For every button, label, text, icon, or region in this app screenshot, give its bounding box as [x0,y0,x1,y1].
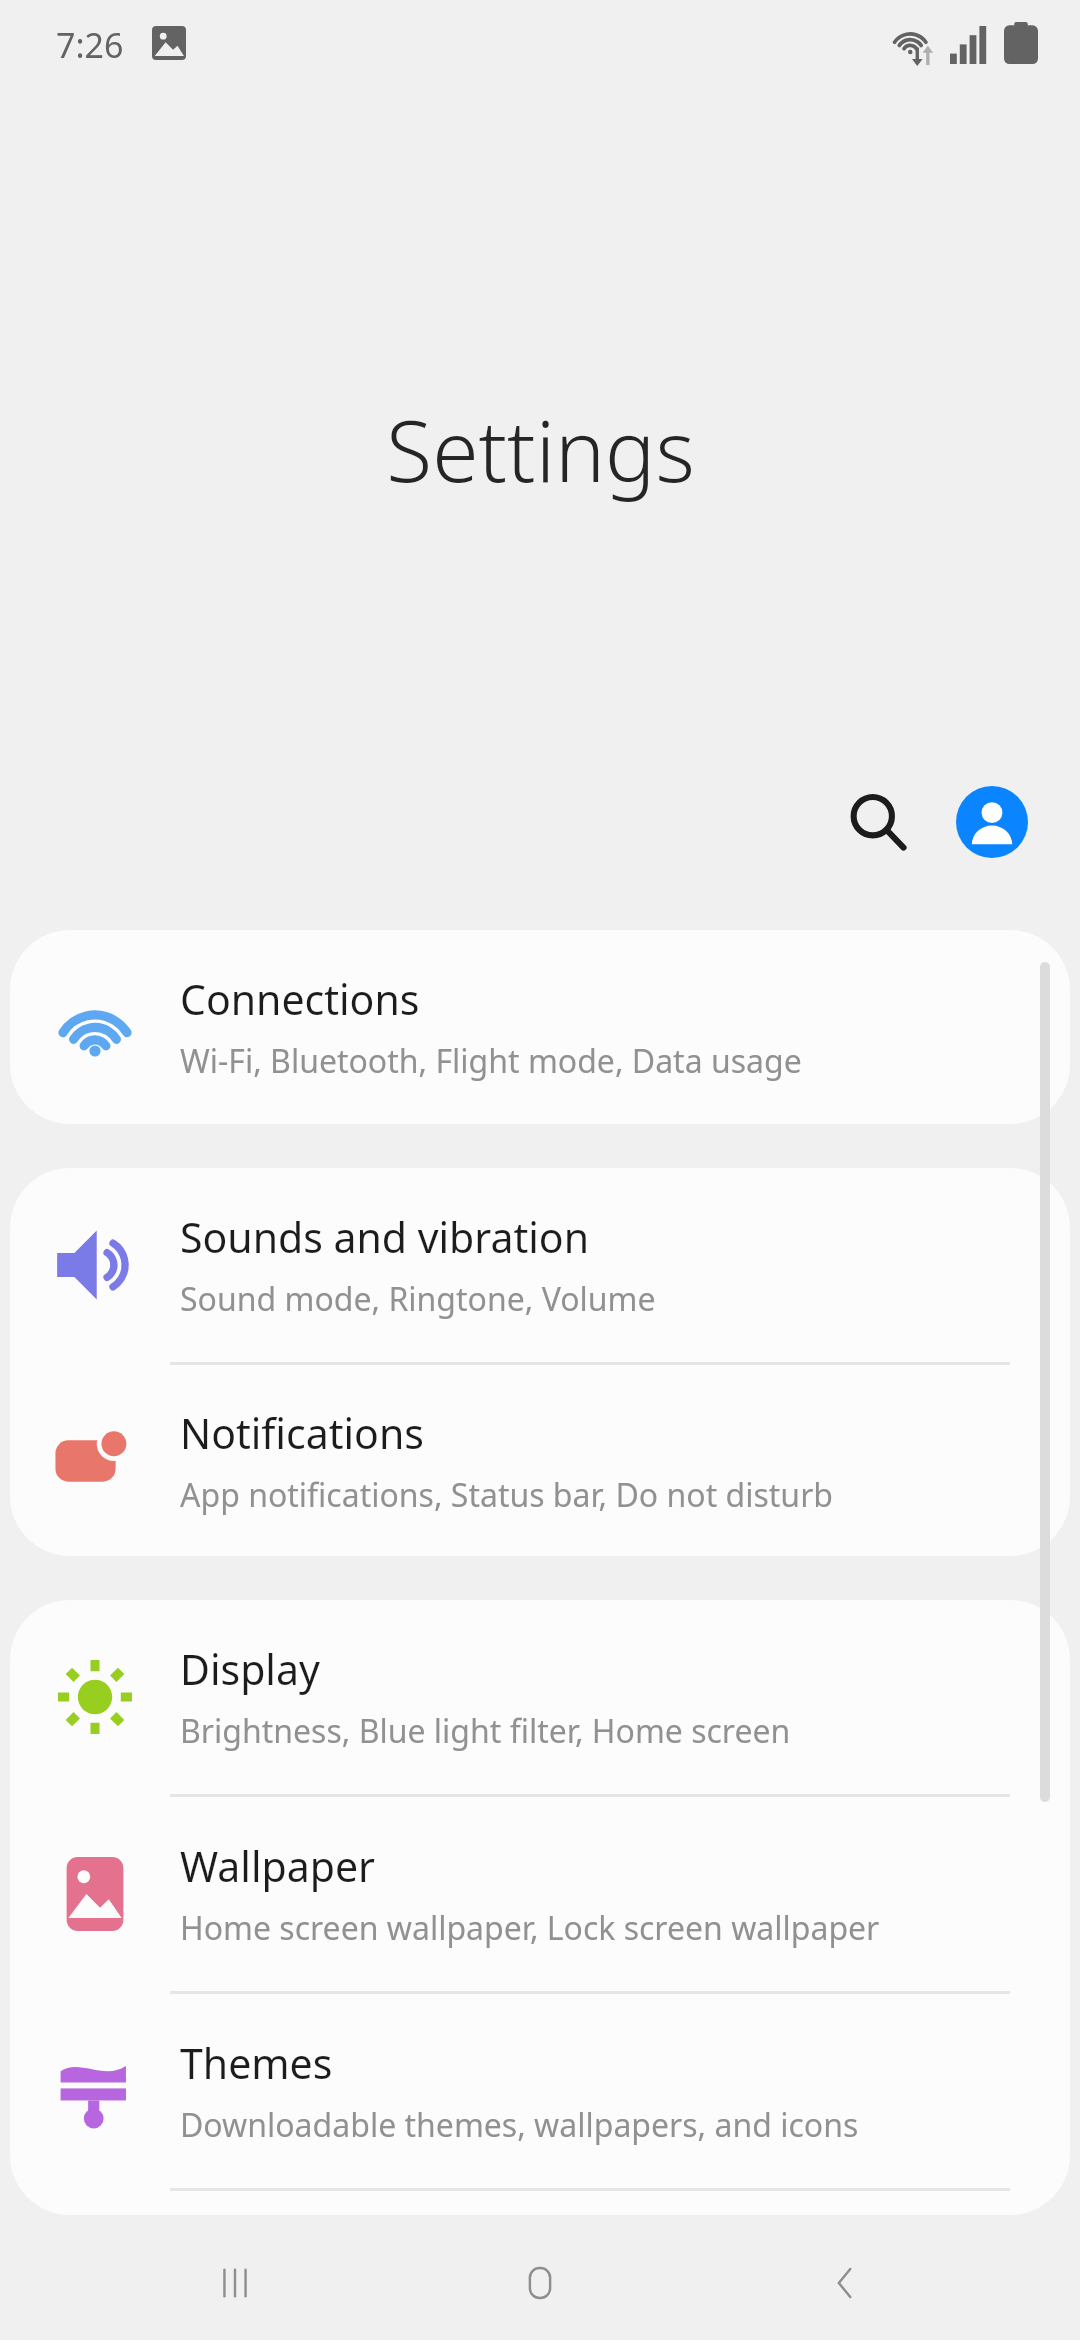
staticText: Settings [386,392,695,506]
button[interactable]: Notifications [10,1365,1070,1556]
staticText: Sound mode, Ringtone, Volume [180,1277,656,1321]
button[interactable]: Themes [10,1994,1070,2188]
staticText: Display [180,1641,320,1697]
staticText: Wi-Fi, Bluetooth, Flight mode, Data usag… [180,1039,802,1083]
button[interactable]: Home [470,2226,610,2340]
button[interactable]: Search [826,770,930,874]
button[interactable]: Display [10,1600,1070,1794]
staticText: Wallpaper [180,1838,375,1894]
staticText: Home screen wallpaper, Lock screen wallp… [180,1906,880,1950]
button[interactable]: Connections [10,930,1070,1124]
button[interactable]: Back [775,2226,915,2340]
staticText: App notifications, Status bar, Do not di… [180,1473,834,1517]
staticText: Sounds and vibration [180,1209,589,1265]
staticText: Notifications [180,1405,424,1461]
button[interactable]: Account [940,770,1044,874]
button[interactable]: Recent apps [165,2226,305,2340]
staticText: Downloadable themes, wallpapers, and ico… [180,2103,859,2147]
staticText: Connections [180,971,420,1027]
button[interactable]: Wallpaper [10,1797,1070,1991]
staticText: 7:26 [56,22,124,68]
staticText: Themes [180,2035,333,2091]
button[interactable]: Sounds and vibration [10,1168,1070,1362]
staticText: Brightness, Blue light filter, Home scre… [180,1709,791,1753]
